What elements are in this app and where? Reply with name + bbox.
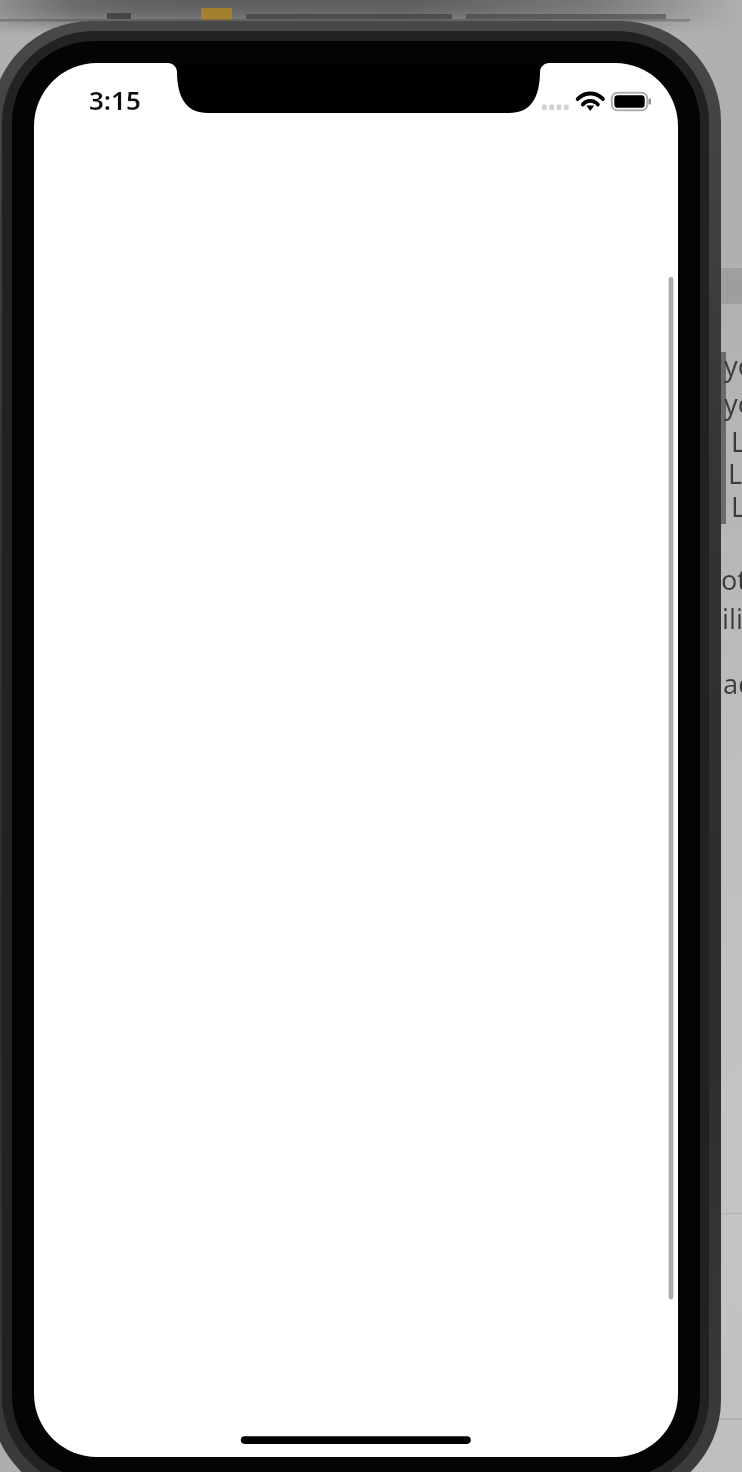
staticText: yo xyxy=(724,347,742,384)
staticText: L. xyxy=(728,455,742,492)
staticText: ili xyxy=(722,600,742,637)
staticText: yo xyxy=(724,385,742,422)
staticText: ad xyxy=(723,665,742,702)
staticText: L xyxy=(731,423,742,460)
staticText: ott xyxy=(721,561,742,598)
staticText: L xyxy=(731,488,742,525)
staticText: 3:15 xyxy=(89,82,141,117)
